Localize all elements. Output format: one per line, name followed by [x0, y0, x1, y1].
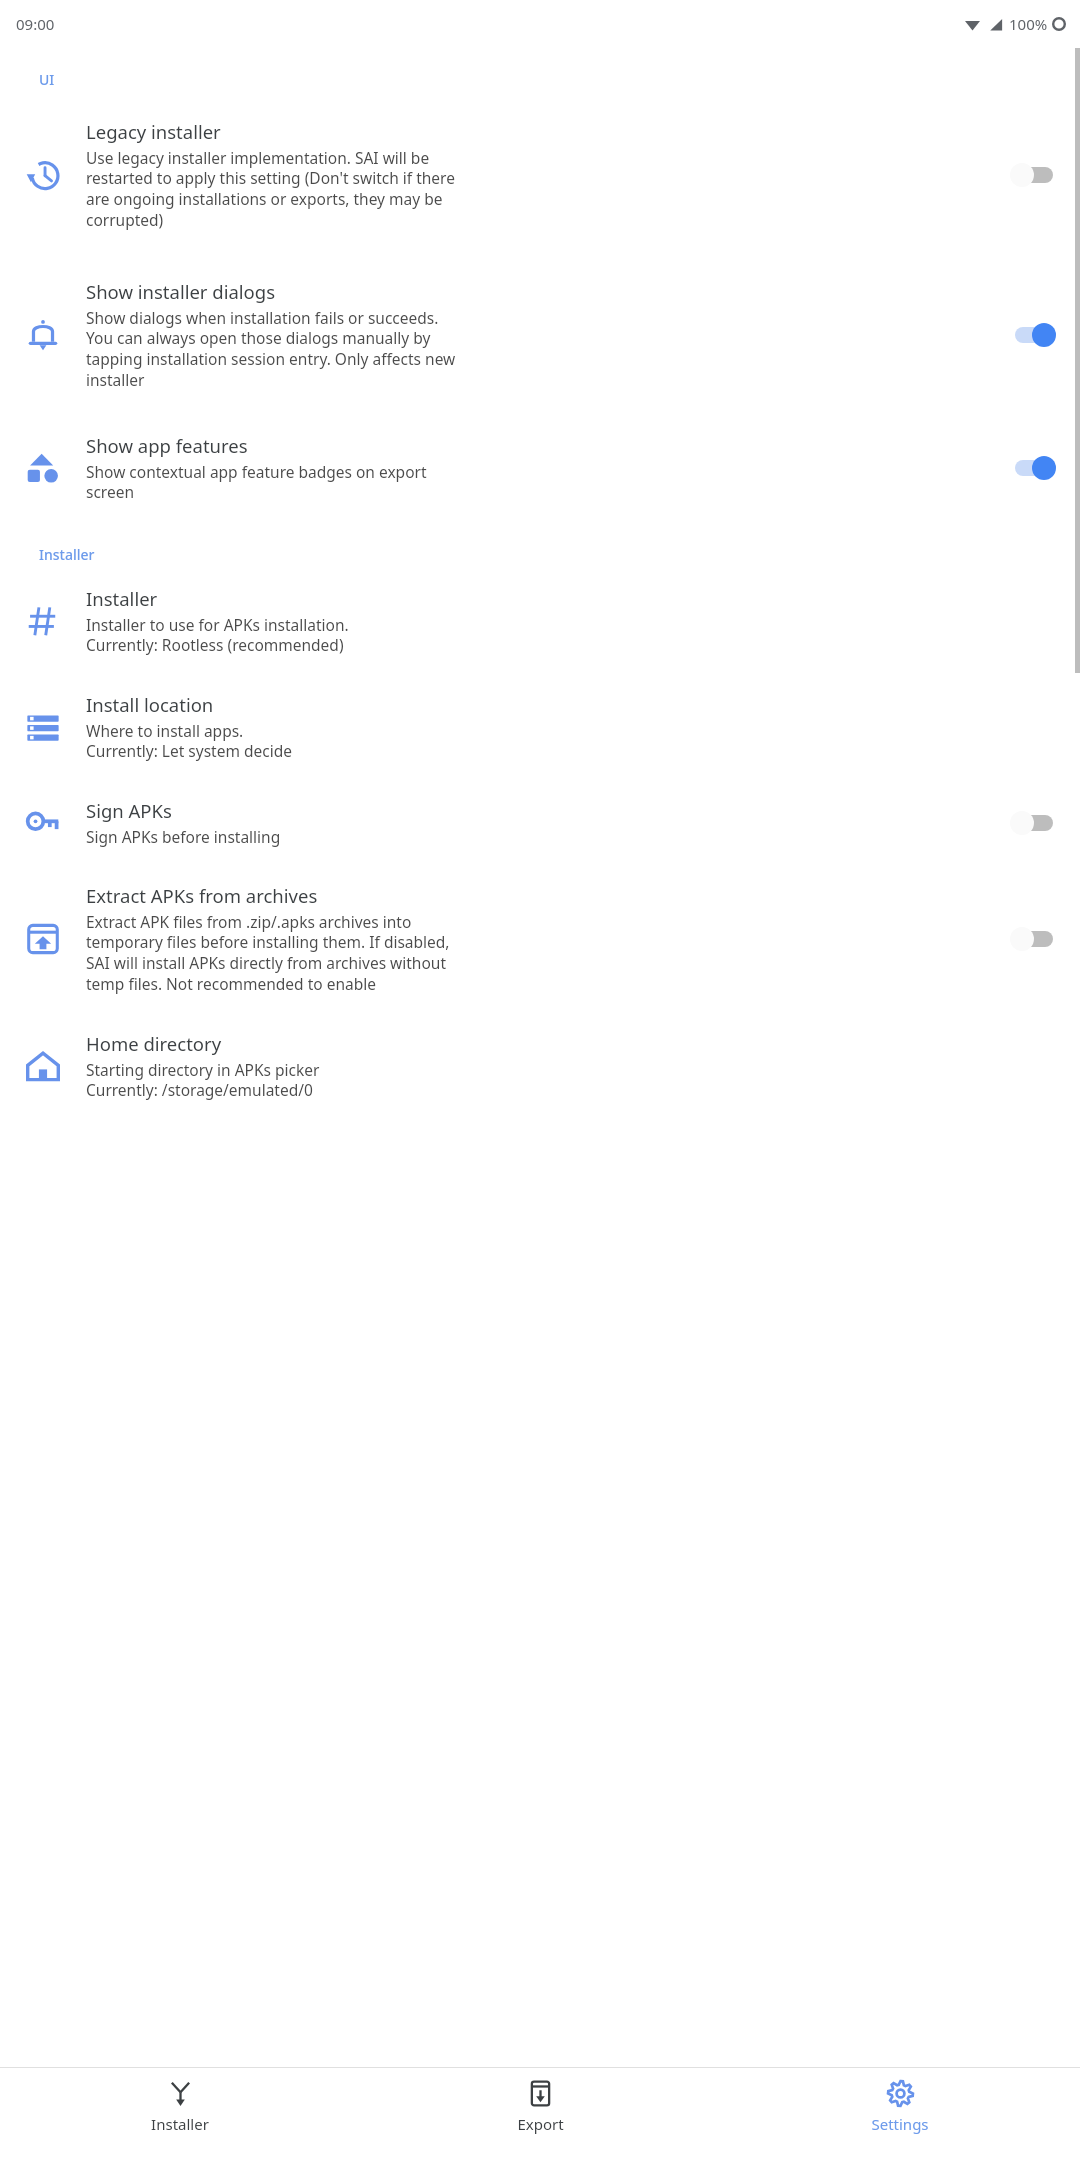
staticText: Export: [517, 2114, 564, 2134]
staticText: Sign APKs: [86, 798, 172, 823]
staticText: Installer: [39, 545, 95, 564]
button[interactable]: Home directory: [0, 1013, 1080, 1119]
staticText: Sign APKs before installing: [86, 826, 281, 847]
staticText: 100%: [1009, 14, 1048, 34]
staticText: Show contextual app feature badges on ex…: [86, 461, 427, 503]
button[interactable]: Settings: [720, 2068, 1080, 2160]
staticText: Extract APKs from archives: [86, 883, 318, 908]
button[interactable]: Export: [360, 2068, 720, 2160]
button[interactable]: Show installer dialogs: [0, 261, 1080, 415]
staticText: Install location: [86, 692, 214, 717]
staticText: Legacy installer: [86, 119, 221, 144]
staticText: Where to install apps. Currently: Let sy…: [86, 720, 292, 762]
button[interactable]: Toggle off: [1010, 160, 1062, 190]
button[interactable]: Toggle off: [1010, 808, 1062, 838]
button[interactable]: Installer: [0, 2068, 360, 2160]
staticText: UI: [39, 70, 55, 89]
staticText: Home directory: [86, 1031, 222, 1056]
button[interactable]: Installer: [0, 564, 1080, 674]
button[interactable]: Extract APKs from archives: [0, 865, 1080, 1013]
staticText: Show dialogs when installation fails or …: [86, 307, 456, 391]
staticText: Show app features: [86, 433, 248, 458]
button[interactable]: Toggle off: [1010, 924, 1062, 954]
button[interactable]: Install location: [0, 674, 1080, 780]
staticText: Installer to use for APKs installation. …: [86, 614, 349, 656]
staticText: 09:00: [16, 14, 55, 34]
button[interactable]: Show app features: [0, 415, 1080, 521]
staticText: Extract APK files from .zip/.apks archiv…: [86, 911, 450, 995]
staticText: Settings: [871, 2114, 929, 2134]
staticText: Show installer dialogs: [86, 279, 276, 304]
staticText: Installer: [86, 586, 158, 611]
button[interactable]: Toggle on: [1010, 320, 1062, 350]
staticText: Starting directory in APKs picker Curren…: [86, 1059, 320, 1101]
button[interactable]: Sign APKs: [0, 780, 1080, 865]
staticText: Use legacy installer implementation. SAI…: [86, 147, 455, 231]
button[interactable]: Legacy installer: [0, 89, 1080, 261]
staticText: Installer: [151, 2114, 209, 2134]
button[interactable]: Toggle on: [1010, 453, 1062, 483]
